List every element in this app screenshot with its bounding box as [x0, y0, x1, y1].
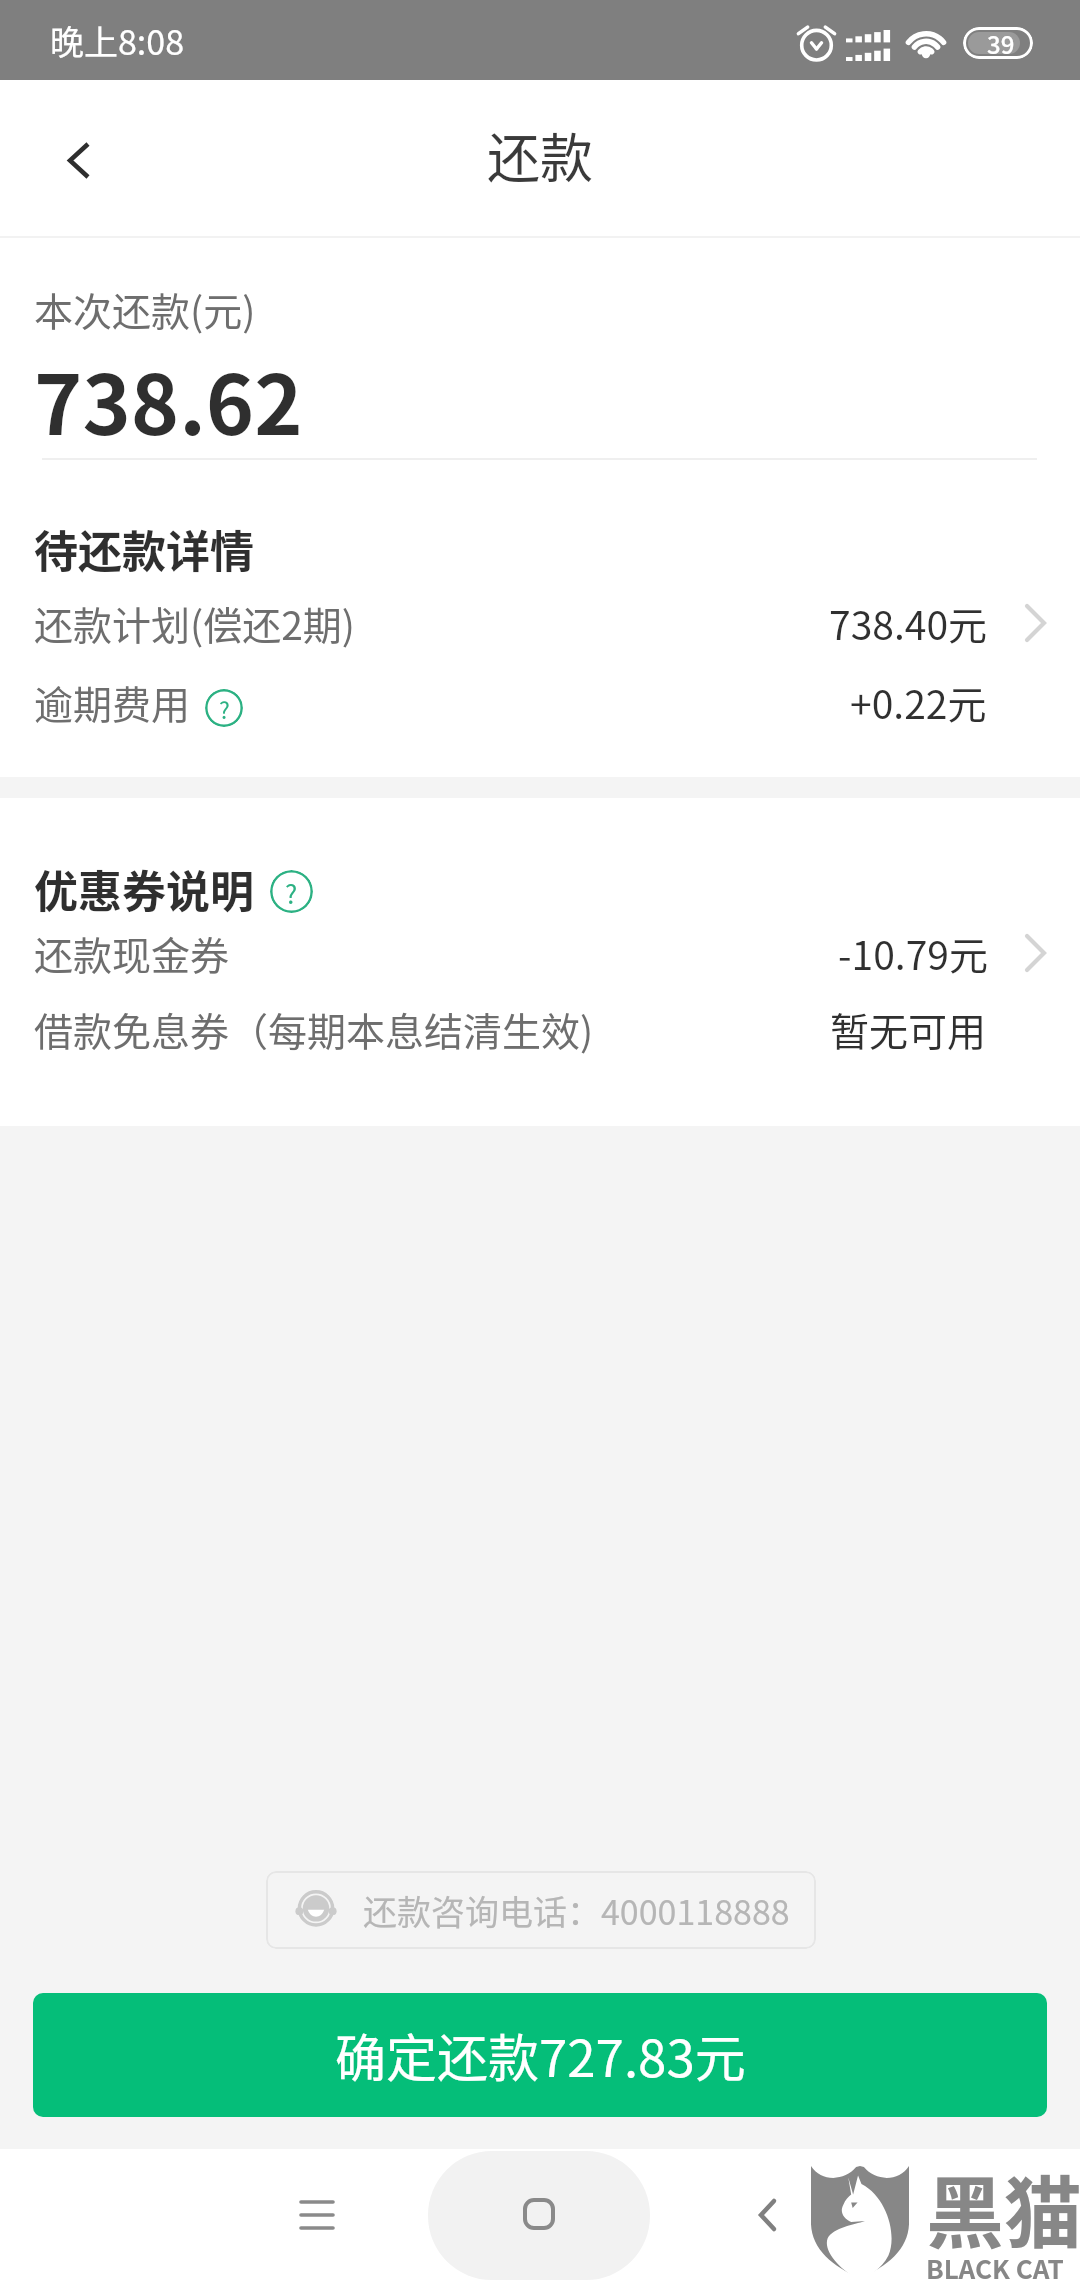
staticText: 还款计划(偿还2期)	[34, 595, 356, 651]
staticText: 738.62	[34, 340, 303, 459]
button[interactable]: More information	[205, 689, 243, 727]
button[interactable]: 确定还款727.83元	[33, 1993, 1047, 2117]
button[interactable]: Back	[707, 2149, 827, 2280]
staticText: 还款	[487, 117, 593, 194]
staticText: 待还款详情	[34, 517, 254, 581]
staticText: 暂无可用	[830, 1001, 987, 1057]
staticText: ?	[285, 874, 298, 911]
button[interactable]: 还款计划(偿还2期)	[0, 583, 1080, 663]
button[interactable]: 还款咨询电话：4000118888	[266, 1871, 816, 1949]
staticText: 逾期费用	[34, 674, 191, 730]
staticText: ?	[219, 693, 230, 726]
staticText: +0.22元	[850, 674, 987, 730]
staticText: 本次还款(元)	[34, 281, 256, 337]
button[interactable]: 还款现金券	[0, 913, 1080, 993]
staticText: 还款咨询电话：4000118888	[363, 1886, 790, 1935]
staticText: 39	[987, 27, 1015, 58]
staticText: 还款现金券	[34, 925, 230, 981]
staticText: 确定还款727.83元	[335, 2018, 746, 2092]
button[interactable]: More information	[270, 870, 313, 913]
staticText: 借款免息券（每期本息结清生效)	[34, 1001, 594, 1057]
staticText: 738.40元	[829, 595, 988, 651]
button[interactable]: Back	[0, 80, 155, 237]
staticText: -10.79元	[838, 925, 988, 981]
button[interactable]: Recents	[257, 2149, 377, 2280]
staticText: 优惠券说明	[34, 857, 254, 921]
button[interactable]: Home	[428, 2151, 650, 2280]
staticText: 黑猫	[926, 2152, 1080, 2265]
staticText: 晚上8:08	[50, 16, 185, 65]
staticText: BLACK CAT	[926, 2249, 1064, 2280]
